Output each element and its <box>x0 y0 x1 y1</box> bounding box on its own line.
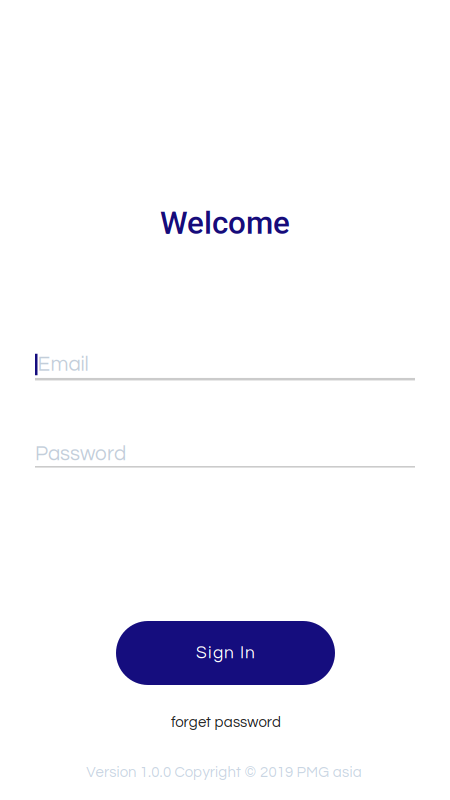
button[interactable]: Email <box>35 353 415 383</box>
staticText: Sign In <box>196 644 255 662</box>
staticText: Welcome <box>160 205 290 241</box>
staticText: Password <box>35 443 126 465</box>
button[interactable]: forget password <box>171 715 281 730</box>
button[interactable]: Sign In <box>116 621 335 685</box>
staticText: forget password <box>171 715 281 730</box>
button[interactable]: Password <box>35 440 415 470</box>
staticText: Email <box>37 354 88 375</box>
staticText: Version 1.0.0 Copyright © 2019 PMG asia <box>86 765 362 780</box>
